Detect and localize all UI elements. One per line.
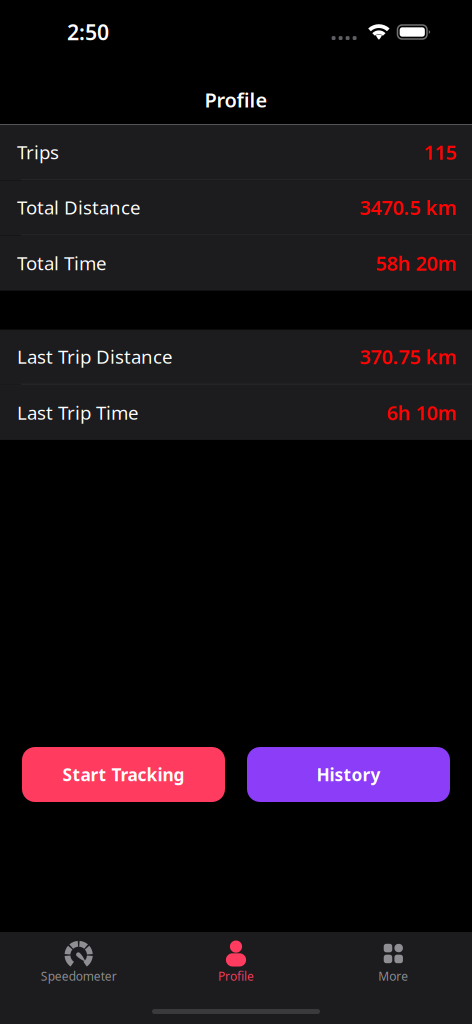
button[interactable]: Total Time (0, 236, 472, 291)
staticText: Start Tracking (62, 763, 184, 786)
staticText: Total Distance (17, 195, 141, 220)
staticText: 58h 20m (375, 250, 456, 276)
staticText: History (316, 763, 380, 786)
staticText: 370.75 km (359, 343, 456, 370)
button[interactable]: Start Tracking (22, 747, 225, 802)
staticText: Last Trip Distance (17, 344, 173, 369)
staticText: 115 (423, 139, 456, 165)
staticText: Profile (204, 86, 267, 113)
staticText: Trips (17, 140, 59, 164)
staticText: Last Trip Time (17, 400, 139, 425)
button[interactable]: Total Distance (0, 180, 472, 236)
button[interactable]: History (247, 747, 450, 802)
staticText: 3470.5 km (359, 194, 456, 221)
staticText: Total Time (17, 251, 107, 275)
staticText: Speedometer (41, 968, 117, 984)
button[interactable]: Profile (157, 932, 315, 992)
staticText: Profile (218, 968, 254, 984)
staticText: 2:50 (67, 18, 109, 46)
staticText: 6h 10m (386, 399, 456, 426)
button[interactable]: Last Trip Distance (0, 330, 472, 385)
button[interactable]: Speedometer (0, 932, 157, 992)
button[interactable]: Trips (0, 125, 472, 180)
staticText: More (378, 968, 408, 984)
button[interactable]: More (315, 932, 472, 992)
button[interactable]: Last Trip Time (0, 385, 472, 440)
